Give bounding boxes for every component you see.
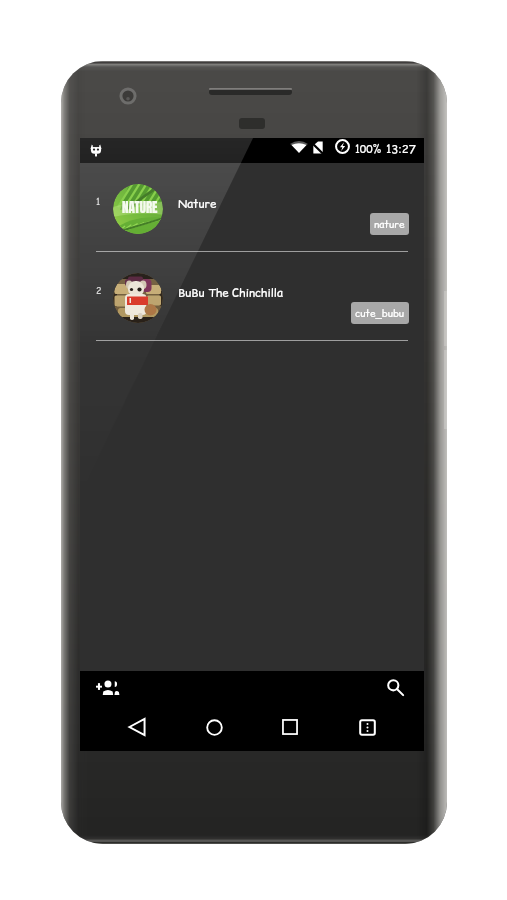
staticText: 100% (355, 142, 382, 157)
button[interactable]: cute_bubu (351, 302, 409, 324)
button[interactable]: Back (119, 709, 155, 745)
staticText: cute_bubu (355, 306, 405, 320)
staticText: NATURE (122, 198, 158, 218)
button[interactable]: 2 (80, 252, 424, 341)
button[interactable]: 1 (80, 163, 424, 252)
staticText: 13:27 (386, 141, 416, 157)
button[interactable]: Menu (349, 709, 385, 745)
staticText: BuBu The Chinchilla (178, 285, 283, 301)
staticText: 1 (96, 196, 101, 209)
button[interactable]: Search (379, 671, 411, 703)
staticText: 2 (96, 285, 102, 298)
staticText: Nature (178, 196, 217, 212)
button[interactable]: Recent apps (272, 709, 308, 745)
staticText: nature (374, 217, 405, 231)
button[interactable]: Add people (93, 671, 125, 703)
button[interactable]: Home (196, 709, 232, 745)
button[interactable]: nature (370, 213, 409, 235)
